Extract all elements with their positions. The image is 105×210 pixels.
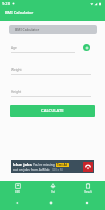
staticText: 320 x 50 [52,168,63,172]
button[interactable]: Home [42,196,60,210]
button[interactable]: blue jobs [11,160,94,173]
button[interactable]: Install [83,162,93,172]
button[interactable]: Result [70,181,105,195]
staticText: Age [11,46,17,50]
staticText: 9:28 [2,1,10,6]
staticText: Result [84,190,92,194]
staticText: BMI Calculator [15,27,40,32]
button[interactable]: Recents [78,196,96,210]
staticText: BMI [15,190,20,194]
button[interactable]: BMI [0,181,35,195]
staticText: CALCULATE [41,108,64,114]
staticText: You're missing [33,163,55,167]
staticText: Weight [11,68,22,72]
button[interactable]: Fat [35,181,70,195]
button[interactable]: CALCULATE [10,105,95,117]
staticText: Height [11,90,22,94]
button[interactable]: BMI Calculator [9,25,97,34]
button[interactable]: Back [8,196,25,210]
staticText: Fat [51,190,55,194]
staticText: Test Ad [57,163,68,167]
staticText: BMI Calculator [5,10,34,15]
staticText: out on jobs from AdMob [13,168,50,172]
button[interactable]: Info [83,44,90,51]
staticText: blue jobs [13,162,32,168]
